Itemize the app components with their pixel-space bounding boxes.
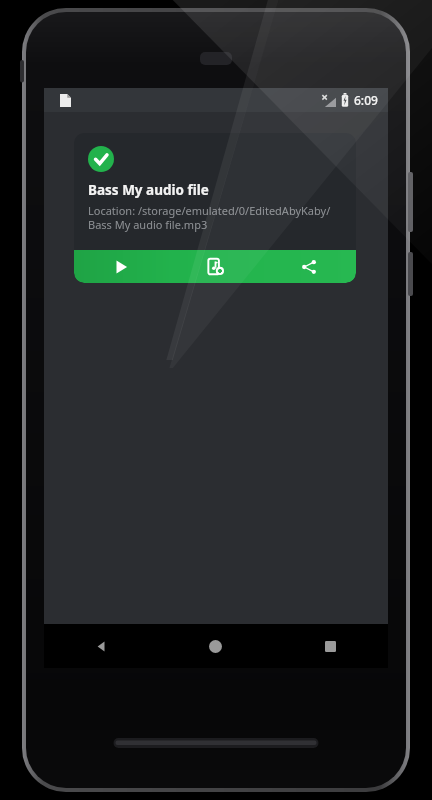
button[interactable]: Share [262,250,356,283]
button[interactable]: Play [74,250,168,283]
staticText: 6:09 [354,92,378,108]
button[interactable]: Home [158,624,273,668]
button[interactable]: Back [44,624,158,668]
button[interactable]: Save as new file [168,250,262,283]
staticText: Location: /storage/emulated/0/EditedAbyK… [88,203,331,232]
button[interactable]: Recent apps [273,624,388,668]
staticText: Bass My audio file [88,181,209,199]
